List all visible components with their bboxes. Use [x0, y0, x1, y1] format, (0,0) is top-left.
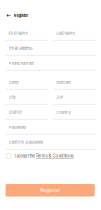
- staticText: Password: [9, 125, 26, 130]
- button[interactable]: Register: [0, 11, 32, 20]
- staticText: District: [9, 110, 22, 115]
- staticText: Register: [40, 187, 60, 193]
- staticText: Email address: [9, 46, 33, 51]
- staticText: Country: [56, 110, 70, 115]
- staticText: City: [9, 95, 16, 100]
- staticText: First name: [9, 31, 28, 36]
- button[interactable]: Register: [6, 184, 95, 196]
- staticText: Street: [9, 80, 19, 85]
- staticText: Last name: [56, 31, 74, 36]
- button[interactable]: I accept the Terms & Conditions: [0, 152, 101, 159]
- staticText: Phone number: [9, 61, 35, 66]
- staticText: Register: [13, 13, 28, 18]
- staticText: ZIP: [56, 95, 63, 100]
- staticText: I accept the Terms & Conditions: [14, 153, 73, 158]
- staticText: Confirm password: [9, 140, 43, 145]
- staticText: Number: [56, 80, 71, 85]
